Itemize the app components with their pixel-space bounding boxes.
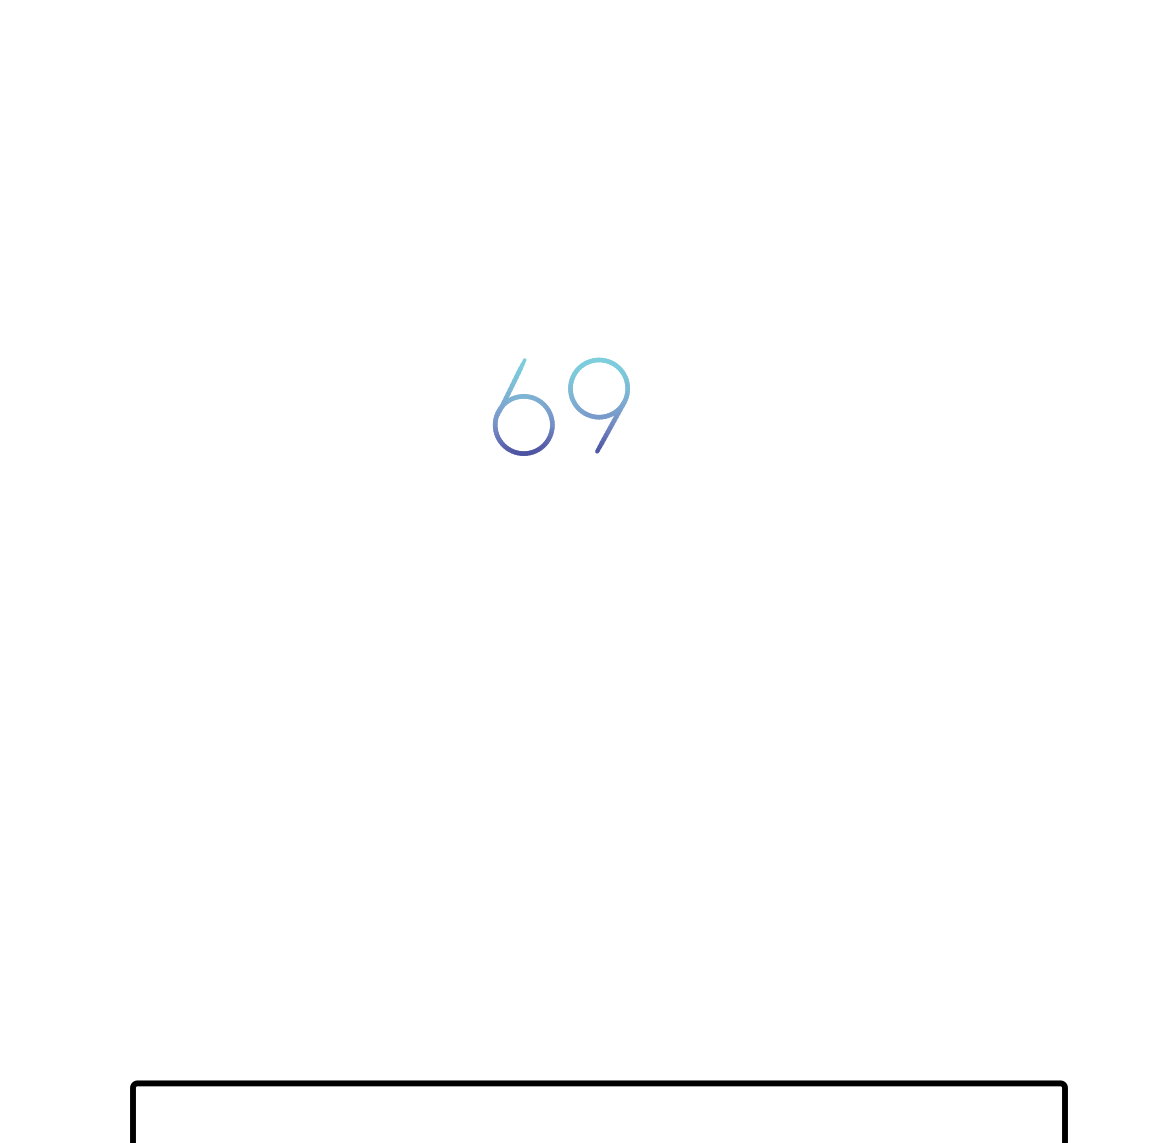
button[interactable]: Next card <box>0 0 1170 1143</box>
